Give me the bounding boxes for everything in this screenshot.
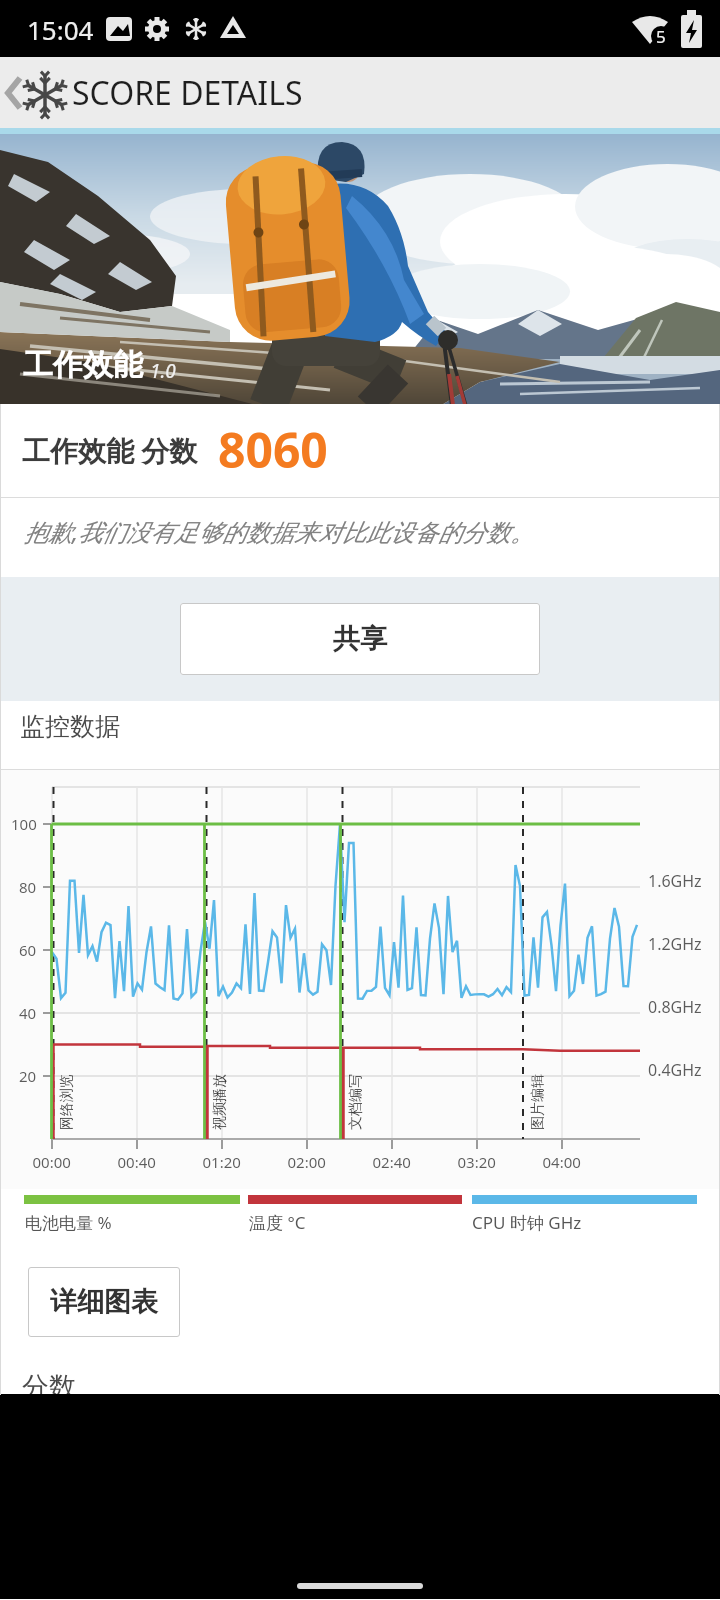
staticText: 分数 [22,1370,76,1394]
staticText: CPU 时钟 GHz [472,1211,582,1234]
staticText: SCORE DETAILS [72,71,303,115]
staticText: 5 [656,25,666,48]
staticText: 电池电量 % [25,1211,112,1234]
staticText: 温度 °C [249,1211,306,1234]
staticText: 1.0 [150,358,176,384]
staticText: 15:04 [27,12,94,47]
staticText: 8060 [218,417,328,482]
staticText: 详细图表 [50,1285,158,1319]
staticText: 工作效能 [23,346,143,384]
staticText: 抱歉,我们没有足够的数据来对比此设备的分数。 [24,515,535,548]
staticText: 监控数据 [20,711,120,742]
staticText: 共享 [333,622,387,656]
staticText: 工作效能 分数 [22,431,198,469]
